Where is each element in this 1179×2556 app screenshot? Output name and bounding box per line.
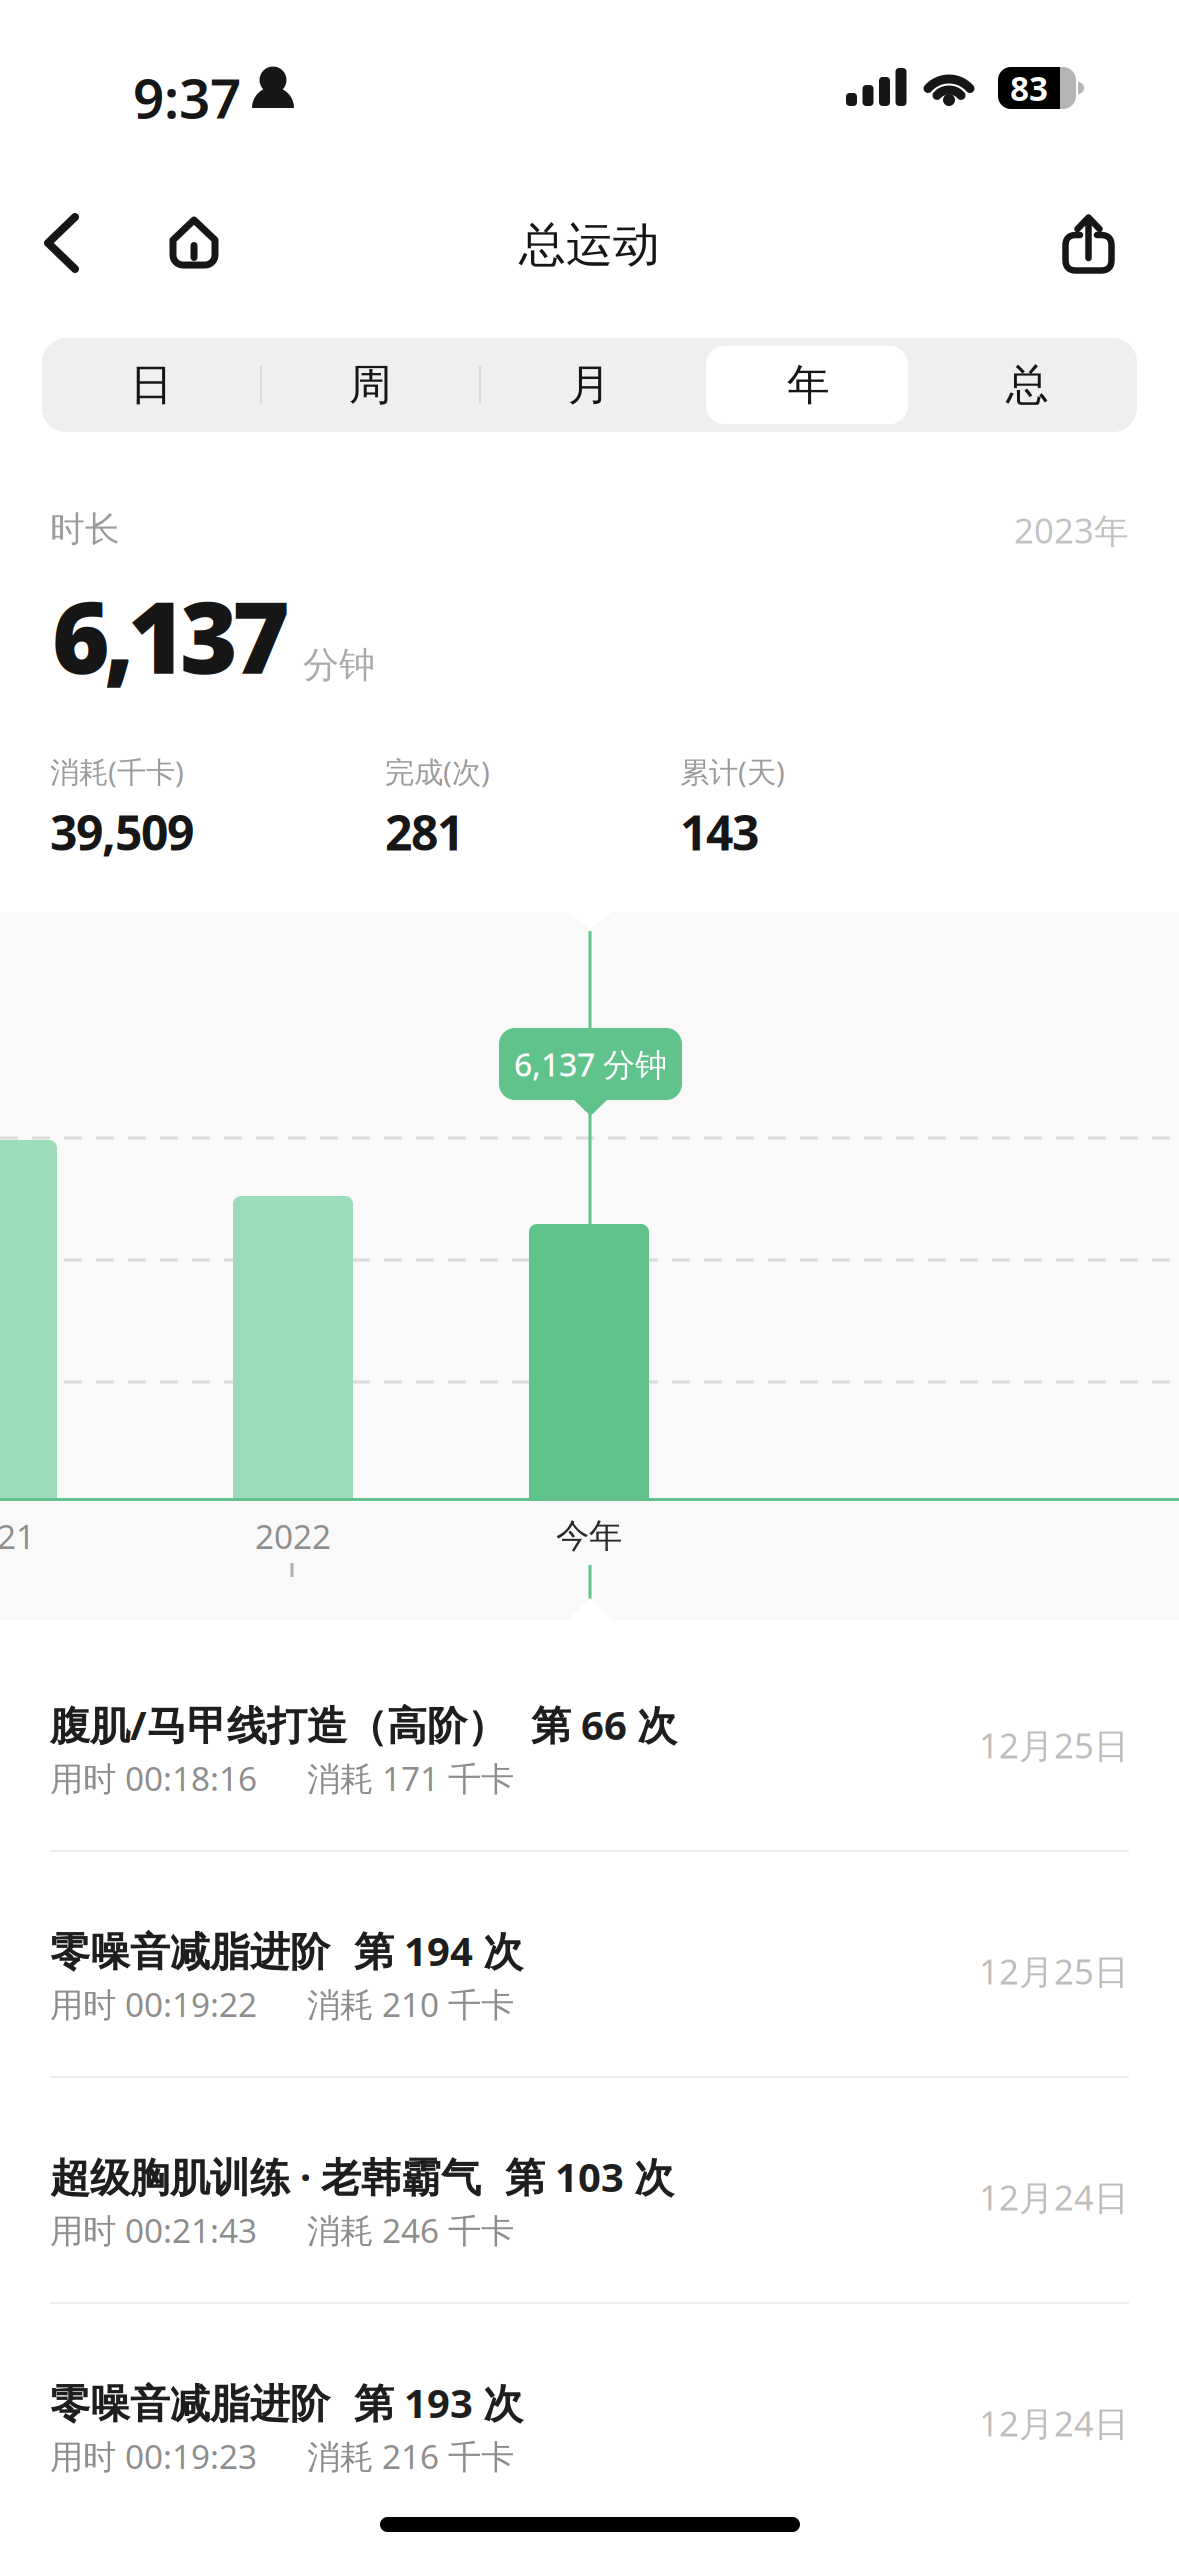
button[interactable]: Share (1064, 215, 1114, 271)
staticText: 超级胸肌训练 · 老韩霸气 第 103 次 (50, 2150, 674, 2203)
staticText: 12月25日 (979, 1948, 1129, 1994)
staticText: 月 (568, 359, 611, 411)
staticText: 9:37 (133, 61, 241, 134)
staticText: 时长 (50, 508, 120, 551)
staticText: 用时 00:21:43 (50, 2208, 257, 2252)
staticText: 2023年 (1014, 507, 1129, 553)
button[interactable]: 年 (699, 338, 918, 432)
staticText: 总运动 (519, 216, 660, 274)
button[interactable]: 零噪音减脂进阶 第 193 次 (0, 2304, 1179, 2530)
staticText: 用时 00:19:22 (50, 1982, 257, 2026)
staticText: 消耗 246 千卡 (307, 2208, 514, 2252)
button[interactable]: 总 (918, 338, 1137, 432)
staticText: 12月24日 (979, 2400, 1129, 2446)
staticText: 39,509 (50, 800, 194, 864)
button[interactable]: 超级胸肌训练 · 老韩霸气 第 103 次 (0, 2078, 1179, 2304)
button[interactable]: 日 (42, 338, 261, 432)
staticText: 零噪音减脂进阶 第 193 次 (50, 2376, 523, 2429)
staticText: 281 (385, 800, 464, 864)
button[interactable]: Home (169, 216, 221, 268)
staticText: 消耗(千卡) (50, 752, 184, 791)
staticText: 消耗 210 千卡 (307, 1982, 514, 2026)
staticText: 2021 (0, 1514, 35, 1558)
button[interactable]: 零噪音减脂进阶 第 194 次 (0, 1852, 1179, 2078)
staticText: 总 (1006, 359, 1049, 411)
button[interactable]: 月 (480, 338, 699, 432)
staticText: 2022 (255, 1514, 331, 1558)
button[interactable]: Back (44, 215, 80, 271)
staticText: 完成(次) (385, 752, 490, 791)
staticText: 腹肌/马甲线打造（高阶） 第 66 次 (50, 1698, 677, 1751)
button[interactable]: 周 (261, 338, 480, 432)
staticText: 6,137 (52, 570, 290, 701)
staticText: 12月25日 (979, 1722, 1129, 1768)
staticText: 零噪音减脂进阶 第 194 次 (50, 1924, 523, 1977)
staticText: 日 (130, 359, 173, 411)
staticText: 用时 00:19:23 (50, 2434, 257, 2478)
staticText: 用时 00:18:16 (50, 1756, 257, 1800)
staticText: 12月24日 (979, 2174, 1129, 2220)
staticText: 消耗 216 千卡 (307, 2434, 514, 2478)
staticText: 累计(天) (680, 752, 785, 791)
staticText: 周 (349, 359, 392, 411)
staticText: 6,137 分钟 (514, 1043, 667, 1085)
staticText: 143 (680, 800, 759, 864)
staticText: 今年 (556, 1515, 622, 1556)
staticText: 83 (1010, 66, 1048, 110)
button[interactable]: 腹肌/马甲线打造（高阶） 第 66 次 (0, 1626, 1179, 1852)
staticText: 分钟 (303, 643, 375, 687)
staticText: 消耗 171 千卡 (307, 1756, 514, 1800)
staticText: 年 (787, 359, 830, 411)
